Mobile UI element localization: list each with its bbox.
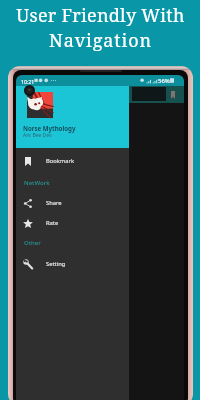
button[interactable]: Share	[16, 193, 129, 213]
staticText: Other	[24, 239, 41, 247]
staticText: Norse Mythology	[23, 124, 76, 132]
staticText: Rate	[46, 219, 59, 227]
staticText: Setting	[46, 260, 66, 268]
button[interactable]: Rate	[16, 213, 129, 233]
staticText: Bookmark	[46, 157, 75, 165]
button[interactable]: Setting	[16, 253, 129, 275]
button[interactable]: Bookmark	[16, 148, 129, 173]
staticText: User Friendly With	[16, 3, 185, 28]
staticText: Share	[46, 199, 62, 207]
staticText: 56%	[158, 77, 170, 85]
staticText: 10:21	[21, 78, 35, 85]
staticText: Navigation	[49, 28, 152, 53]
staticText: Ant Bee Dev	[23, 132, 52, 139]
staticText: NetWork	[24, 179, 50, 187]
